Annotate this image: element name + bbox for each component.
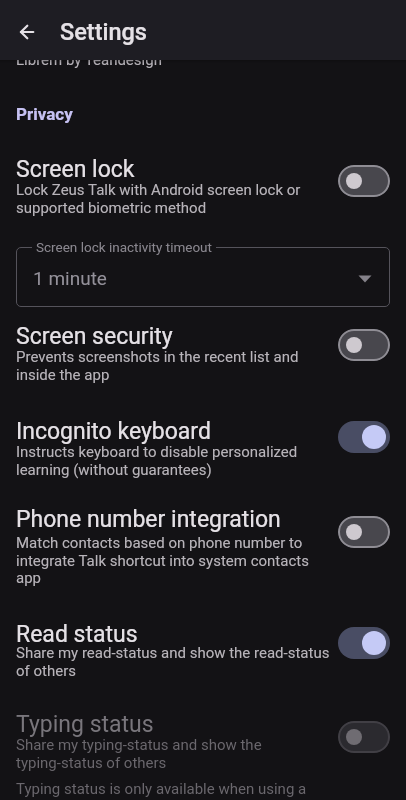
staticText: Settings [60, 18, 148, 46]
staticText: Prevents screenshots in the recent list … [16, 348, 299, 383]
staticText: Read status [16, 621, 138, 648]
button[interactable]: Phone number integration [0, 498, 406, 598]
button[interactable]: Incognito keyboard [0, 410, 406, 482]
button[interactable]: Screen security [0, 315, 406, 398]
staticText: Lock Zeus Talk with Android screen lock … [16, 181, 301, 216]
button[interactable] [16, 247, 390, 307]
staticText: Typing status [16, 711, 154, 738]
staticText: Screen lock inactivity timeout [36, 239, 212, 255]
staticText: Instructs keyboard to disable personaliz… [16, 443, 298, 478]
staticText: Share my typing-status and show the typi… [16, 736, 262, 771]
button[interactable]: Typing status [0, 703, 406, 778]
button[interactable]: Read status [0, 613, 406, 688]
staticText: Librem by Teandesign [16, 51, 162, 69]
staticText: 1 minute [33, 267, 107, 289]
button[interactable] [8, 18, 48, 58]
staticText: Match contacts based on phone number to … [16, 534, 309, 586]
staticText: Incognito keyboard [16, 418, 211, 445]
staticText: Phone number integration [16, 506, 281, 533]
staticText: Screen security [16, 323, 173, 350]
button[interactable]: Screen lock [0, 145, 406, 227]
staticText: Share my read-status and show the read-s… [16, 644, 330, 679]
staticText: Screen lock [16, 156, 135, 183]
staticText: Typing status is only available when usi… [16, 780, 307, 798]
staticText: Privacy [16, 104, 73, 124]
